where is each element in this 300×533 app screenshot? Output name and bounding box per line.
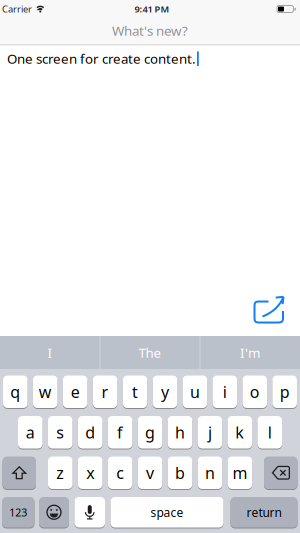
- button[interactable]: t: [123, 375, 147, 408]
- staticText: m: [232, 462, 247, 483]
- button[interactable]: [253, 293, 285, 324]
- staticText: r: [102, 381, 109, 402]
- staticText: s: [56, 422, 64, 443]
- staticText: I'm: [240, 344, 260, 361]
- staticText: z: [56, 462, 64, 483]
- staticText: c: [116, 462, 124, 483]
- staticText: What's new?: [112, 22, 188, 39]
- button[interactable]: [39, 496, 69, 528]
- staticText: i: [223, 381, 227, 402]
- button[interactable]: [264, 456, 297, 489]
- staticText: x: [86, 462, 94, 483]
- button[interactable]: o: [242, 375, 267, 408]
- staticText: Carrier: [2, 3, 32, 15]
- button[interactable]: d: [78, 415, 102, 449]
- button[interactable]: [2, 456, 36, 489]
- button[interactable]: i: [212, 375, 237, 408]
- staticText: I: [47, 344, 52, 361]
- button[interactable]: y: [153, 375, 177, 408]
- button[interactable]: l: [257, 415, 282, 449]
- button[interactable]: v: [138, 456, 162, 489]
- button[interactable]: r: [93, 375, 117, 408]
- button[interactable]: [74, 496, 105, 528]
- button[interactable]: c: [108, 456, 132, 489]
- staticText: d: [85, 422, 95, 443]
- button[interactable]: m: [228, 456, 252, 489]
- staticText: t: [132, 381, 138, 402]
- staticText: The: [138, 344, 161, 361]
- staticText: One screen for create content.: [7, 50, 196, 67]
- button[interactable]: x: [78, 456, 102, 489]
- button[interactable]: q: [3, 375, 28, 408]
- button[interactable]: z: [48, 456, 73, 489]
- button[interactable]: g: [138, 415, 162, 449]
- button[interactable]: n: [198, 456, 222, 489]
- staticText: 123: [9, 505, 27, 519]
- staticText: h: [175, 422, 185, 443]
- button[interactable]: I'm: [202, 336, 298, 369]
- staticText: u: [190, 381, 200, 402]
- button[interactable]: return: [230, 496, 297, 528]
- staticText: p: [280, 381, 290, 402]
- button[interactable]: j: [198, 415, 222, 449]
- staticText: q: [10, 381, 20, 402]
- staticText: w: [39, 381, 52, 402]
- button[interactable]: b: [168, 456, 192, 489]
- staticText: l: [268, 422, 272, 443]
- staticText: 9:41 PM: [134, 3, 169, 15]
- button[interactable]: The: [102, 336, 198, 369]
- button[interactable]: e: [63, 375, 87, 408]
- staticText: o: [250, 381, 260, 402]
- button[interactable]: k: [227, 415, 252, 449]
- staticText: f: [117, 422, 123, 443]
- staticText: b: [175, 462, 185, 483]
- staticText: y: [161, 381, 169, 402]
- button[interactable]: h: [168, 415, 192, 449]
- staticText: n: [205, 462, 215, 483]
- staticText: e: [71, 381, 80, 402]
- staticText: g: [145, 422, 155, 443]
- button[interactable]: space: [110, 496, 223, 528]
- button[interactable]: a: [18, 415, 43, 449]
- button[interactable]: s: [48, 415, 72, 449]
- button[interactable]: u: [183, 375, 207, 408]
- button[interactable]: p: [272, 375, 297, 408]
- button[interactable]: I: [2, 336, 98, 369]
- button[interactable]: 123: [2, 496, 34, 528]
- staticText: v: [146, 462, 154, 483]
- staticText: j: [208, 422, 212, 443]
- staticText: return: [246, 504, 281, 520]
- staticText: space: [150, 504, 183, 520]
- staticText: k: [235, 422, 244, 443]
- button[interactable]: w: [33, 375, 57, 408]
- staticText: a: [26, 422, 35, 443]
- button[interactable]: f: [108, 415, 132, 449]
